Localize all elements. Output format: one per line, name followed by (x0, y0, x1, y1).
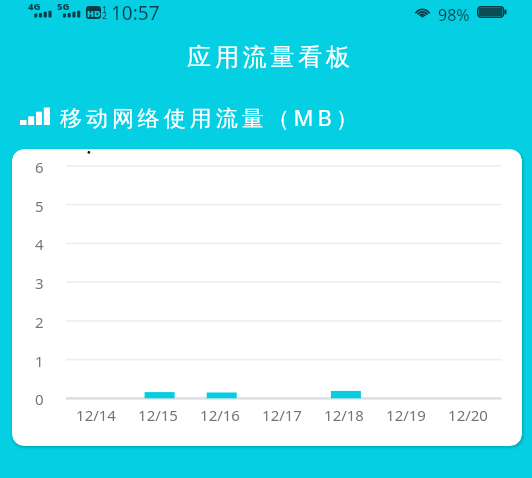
staticText: 12/15 (138, 405, 178, 425)
staticText: 12/18 (324, 405, 364, 425)
staticText: HD (87, 7, 101, 19)
staticText: 6 (35, 157, 44, 175)
staticText: 4G (28, 0, 41, 13)
staticText: 移动网络使用流量（MB） (60, 102, 362, 132)
staticText: 2 (35, 312, 44, 330)
button[interactable]: 12/18 (312, 404, 376, 426)
staticText: 12/14 (76, 405, 116, 425)
staticText: 2 (102, 10, 107, 22)
staticText: 4 (35, 234, 44, 252)
staticText: 3 (35, 273, 44, 291)
button[interactable]: 12/19 (374, 404, 438, 426)
staticText: 10:57 (111, 0, 160, 26)
button[interactable]: 12/17 (250, 404, 314, 426)
staticText: 98% (438, 4, 470, 26)
staticText: 应用流量看板 (187, 42, 354, 72)
button[interactable]: 应用流量看板 (0, 39, 532, 75)
staticText: 1 (102, 4, 107, 16)
button[interactable]: 12/14 (64, 404, 128, 426)
staticText: 5G (57, 0, 70, 13)
button[interactable]: 12/15 (126, 404, 190, 426)
staticText: 1 (35, 351, 44, 369)
button[interactable]: 6 (12, 149, 522, 446)
staticText: 0 (35, 389, 44, 407)
button[interactable]: 移动网络使用流量（MB） (14, 103, 354, 133)
staticText: 12/19 (386, 405, 426, 425)
button[interactable]: 12/20 (436, 404, 500, 426)
staticText: 5 (35, 196, 44, 214)
staticText: 12/20 (448, 405, 488, 425)
staticText: 12/17 (262, 405, 302, 425)
staticText: 12/16 (200, 405, 240, 425)
other: Battery 98 percent (477, 6, 507, 18)
button[interactable]: 12/16 (188, 404, 252, 426)
other: Wi-Fi (414, 5, 431, 18)
